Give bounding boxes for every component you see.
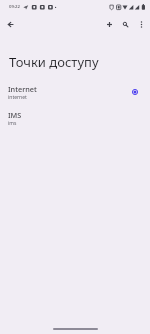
button[interactable]: Add	[100, 15, 118, 33]
staticText: IMS	[8, 110, 22, 120]
staticText: Internet	[8, 84, 37, 94]
staticText: internet	[8, 94, 27, 101]
staticText: Точки доступу	[9, 53, 99, 71]
staticText: 09:22	[9, 3, 20, 9]
staticText: ims	[8, 120, 17, 127]
button[interactable]: More options	[133, 16, 149, 32]
button[interactable]: Internet	[0, 79, 150, 105]
button[interactable]: Search	[117, 16, 133, 32]
button[interactable]: IMS	[0, 105, 150, 131]
button[interactable]: Back	[0, 14, 20, 34]
